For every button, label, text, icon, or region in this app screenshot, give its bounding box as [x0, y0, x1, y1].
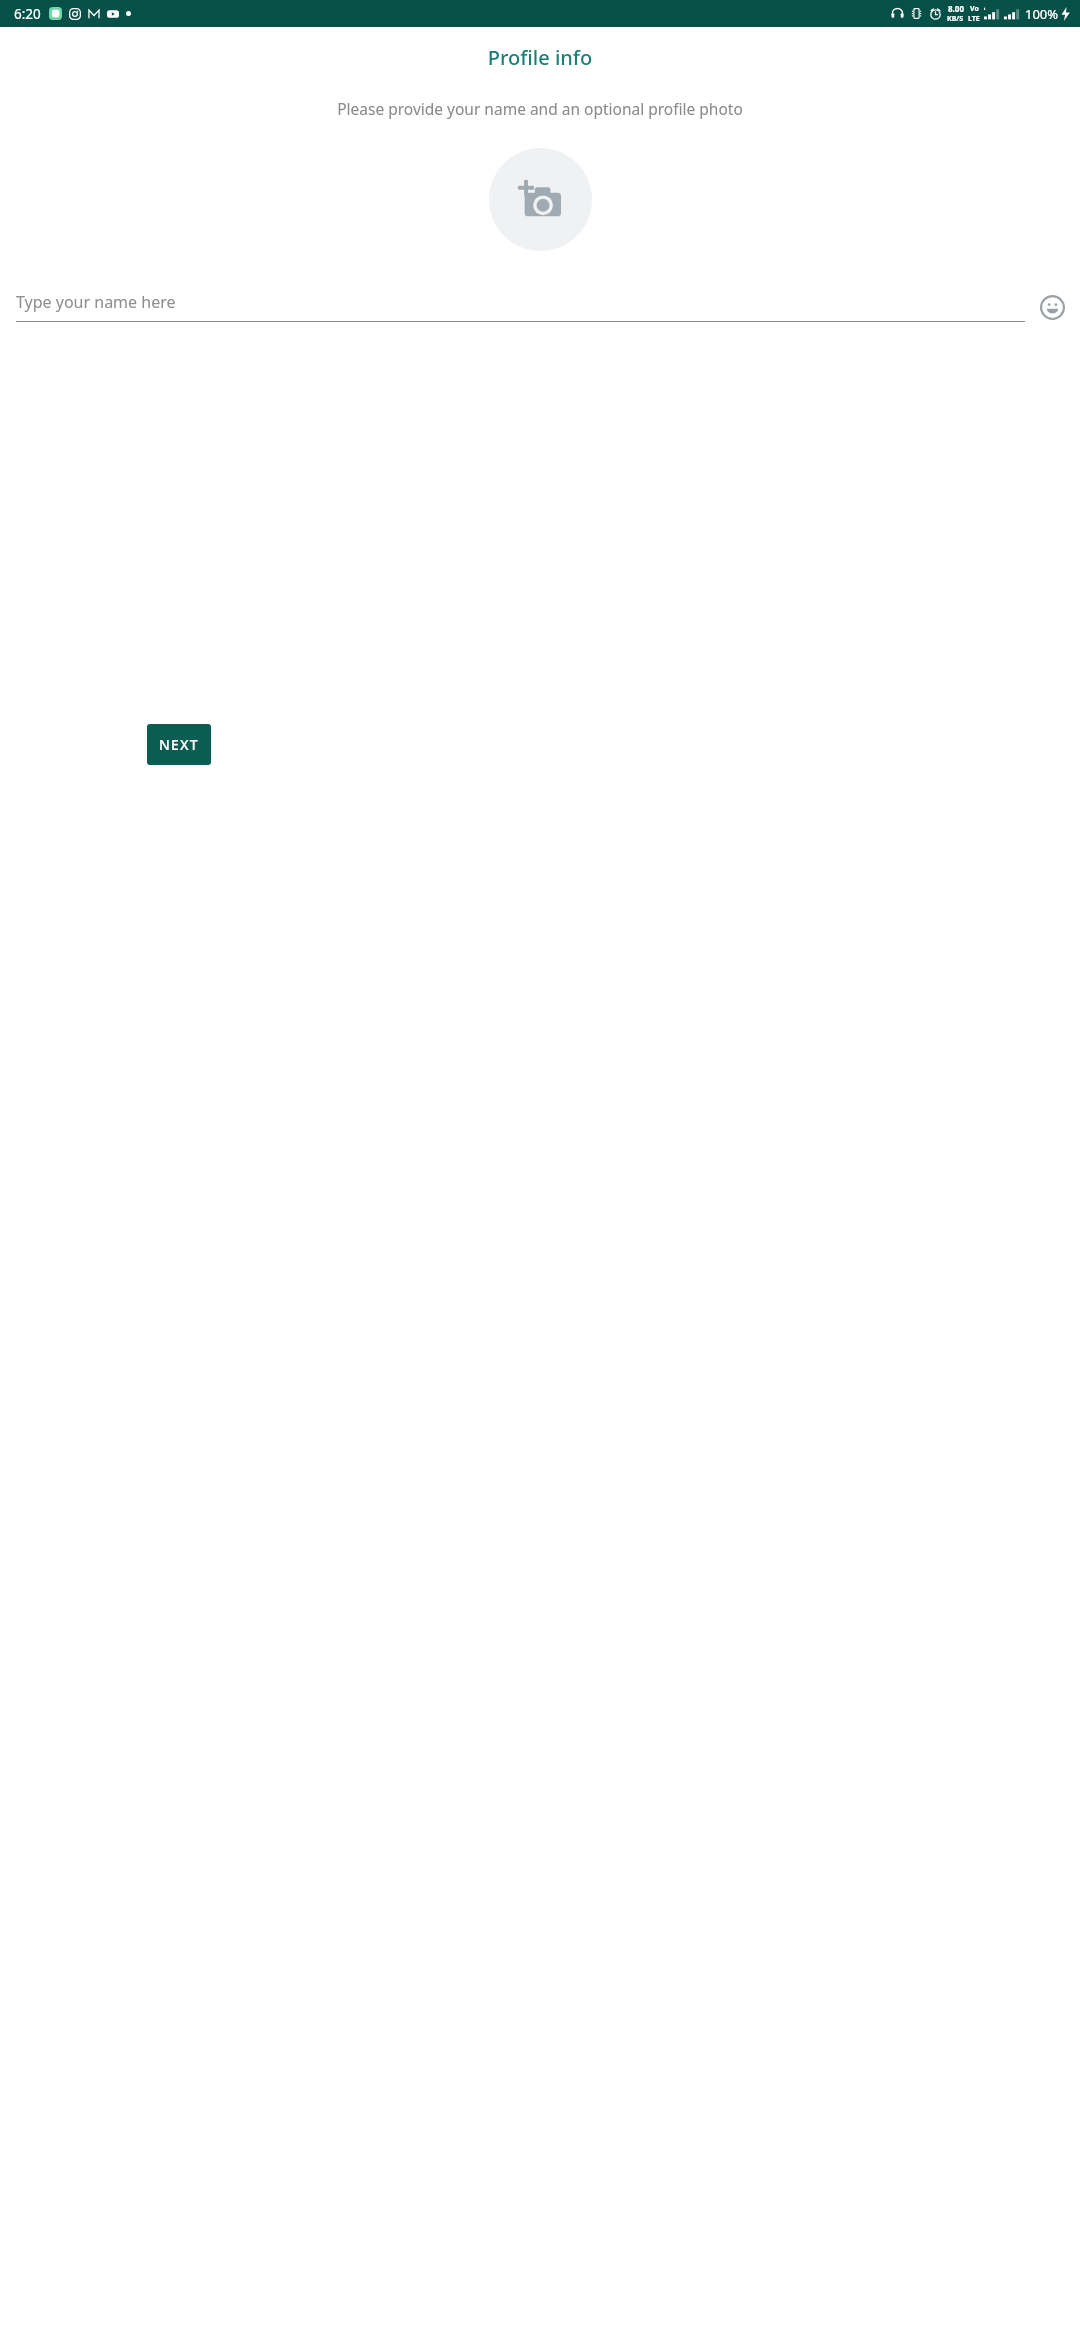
button[interactable]: NEXT — [147, 724, 211, 765]
staticText: 8.00 — [948, 3, 964, 14]
staticText: KB/S — [947, 14, 964, 24]
staticText: Please provide your name and an optional… — [20, 98, 1060, 119]
staticText: Type your name here — [16, 291, 176, 313]
button[interactable]: Emoji — [1037, 292, 1067, 322]
staticText: 100% — [1025, 5, 1059, 23]
button[interactable]: Add profile photo — [489, 148, 592, 251]
staticText: LTE — [968, 14, 980, 24]
staticText: 6:20 — [14, 5, 41, 23]
staticText: Profile info — [0, 44, 1080, 71]
staticText: Vo — [970, 4, 979, 14]
staticText: NEXT — [159, 735, 199, 754]
